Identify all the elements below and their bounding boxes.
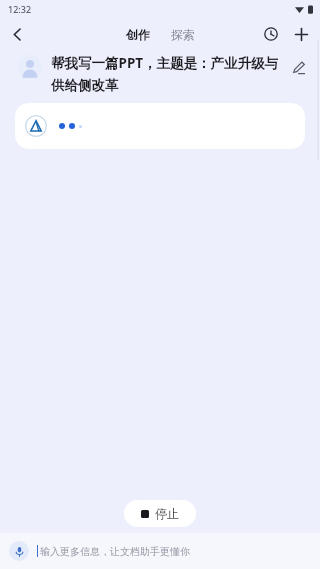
button[interactable]: 探索 [165, 22, 201, 47]
button[interactable]: Back [0, 18, 34, 50]
staticText: 帮我写一篇PPT，主题是：产业升级与供给侧改革 [51, 54, 284, 94]
button[interactable]: New chat [286, 19, 316, 49]
other: Voice input [9, 541, 29, 561]
staticText: 停止 [155, 506, 179, 521]
button[interactable] [15, 103, 305, 149]
button[interactable]: 停止 [124, 500, 196, 527]
button[interactable]: History [256, 19, 286, 49]
staticText: 输入更多信息，让文档助手更懂你 [40, 545, 190, 558]
button[interactable]: 创作 [120, 22, 156, 47]
button[interactable]: Voice input [0, 541, 320, 561]
button[interactable]: Edit [284, 53, 312, 81]
staticText: 12:32 [8, 3, 32, 15]
staticText: 创作 [126, 27, 150, 42]
staticText: 探索 [171, 27, 195, 42]
